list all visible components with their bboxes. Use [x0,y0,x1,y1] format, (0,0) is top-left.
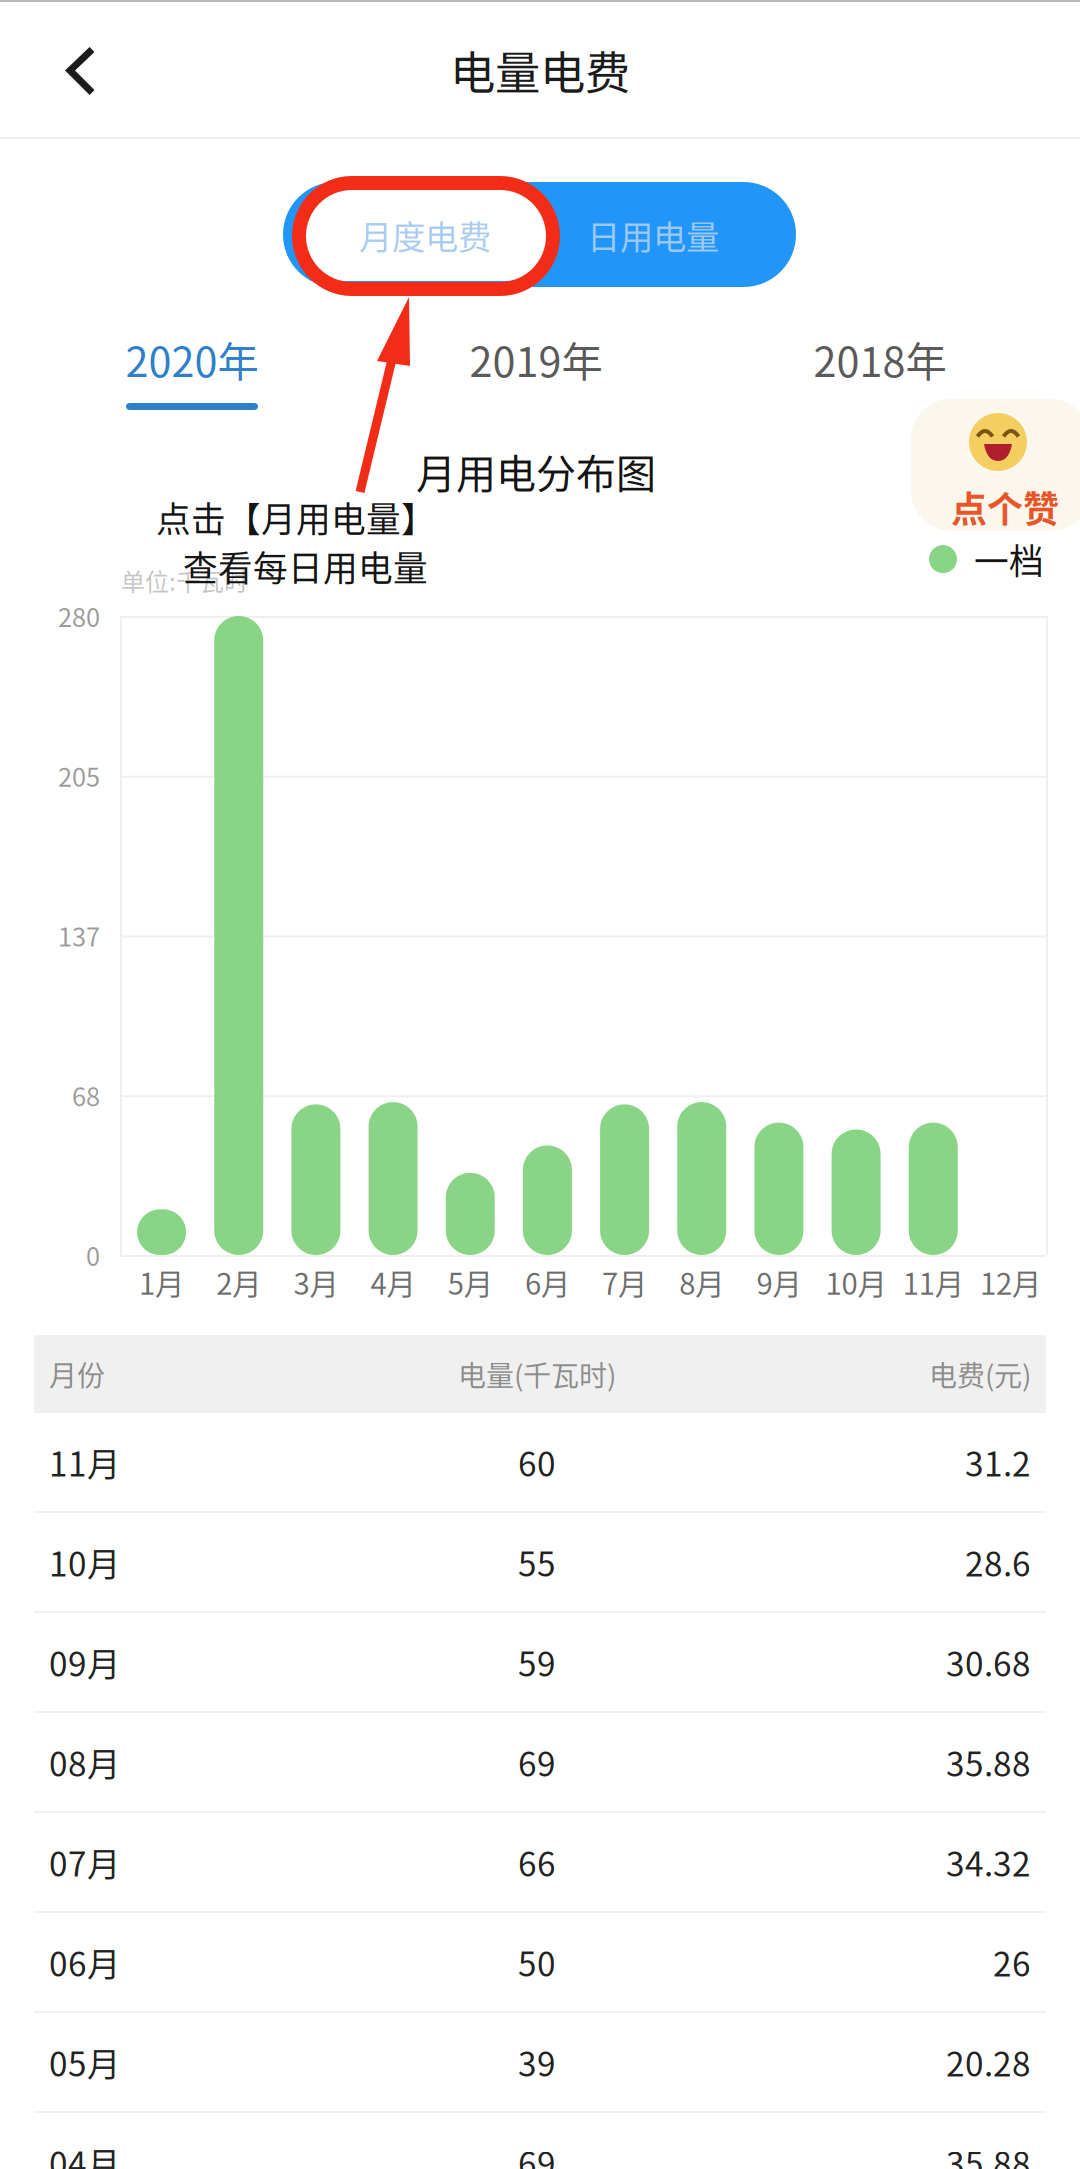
staticText: 34.32 [946,1838,1031,1886]
staticText: 日用电量 [587,211,719,259]
staticText: 08月 [49,1738,120,1786]
staticText: 1月 [139,1261,184,1303]
staticText: 31.2 [965,1438,1031,1486]
staticText: 11月 [49,1438,120,1486]
staticText: 一档 [974,534,1044,584]
staticText: 5月 [448,1261,493,1303]
staticText: 10月 [49,1538,120,1586]
button[interactable]: 06月 [34,1913,1046,2013]
button[interactable]: 2020年 [20,330,364,410]
button[interactable]: 10月 [34,1513,1046,1613]
staticText: 07月 [49,1838,120,1886]
staticText: 0 [86,1237,100,1273]
staticText: 26 [993,1938,1031,1986]
staticText: 39 [518,2038,556,2086]
staticText: 电量(千瓦时) [458,1354,616,1394]
staticText: 280 [58,598,100,634]
staticText: 2019年 [469,329,602,389]
staticText: 09月 [49,1638,120,1686]
button[interactable]: 07月 [34,1813,1046,1913]
button[interactable]: 04月 [34,2113,1046,2169]
staticText: 月用电分布图 [416,442,656,500]
staticText: 55 [518,1538,556,1586]
button[interactable]: 2018年 [708,330,1052,410]
staticText: 7月 [602,1261,647,1303]
staticText: 2018年 [813,329,946,389]
staticText: 单位:千瓦时 [121,563,248,598]
staticText: 20.28 [946,2038,1031,2086]
staticText: 04月 [49,2138,120,2169]
button[interactable]: 08月 [34,1713,1046,1813]
button[interactable]: 11月 [34,1413,1046,1513]
staticText: 6月 [525,1261,570,1303]
button[interactable]: 返回 [21,11,141,131]
staticText: 69 [518,2138,556,2169]
staticText: 30.68 [946,1638,1031,1686]
staticText: 8月 [679,1261,724,1303]
staticText: 2月 [216,1261,261,1303]
staticText: 2020年 [125,329,258,389]
button[interactable]: 09月 [34,1613,1046,1713]
staticText: 11月 [903,1261,964,1303]
button[interactable]: 2019年 [364,330,708,410]
button[interactable]: 日用电量 [530,189,776,281]
staticText: 35.88 [946,1738,1031,1786]
staticText: 4月 [371,1261,416,1303]
staticText: 12月 [980,1261,1041,1303]
staticText: 35.88 [946,2138,1031,2169]
staticText: 点个赞 [951,481,1059,533]
staticText: 电费(元) [929,1354,1031,1394]
staticText: 66 [518,1838,556,1886]
staticText: 9月 [756,1261,801,1303]
button[interactable]: 月度电费 [298,189,552,281]
staticText: 68 [72,1077,100,1114]
staticText: 59 [518,1638,556,1686]
staticText: 电量电费 [450,37,630,103]
staticText: 50 [518,1938,556,1986]
staticText: 60 [518,1438,556,1486]
staticText: 05月 [49,2038,120,2086]
staticText: 点击【月用电量】 [156,492,436,542]
staticText: 137 [58,917,100,954]
staticText: 06月 [49,1938,120,1986]
staticText: 10月 [826,1261,887,1303]
staticText: 月份 [49,1354,105,1394]
staticText: 28.6 [965,1538,1031,1586]
button[interactable]: 点个赞 [911,399,1080,531]
staticText: 69 [518,1738,556,1786]
staticText: 月度电费 [359,211,491,259]
staticText: 205 [58,757,100,794]
staticText: 3月 [293,1261,338,1303]
staticText: 查看每日用电量 [183,541,428,591]
button[interactable]: 05月 [34,2013,1046,2113]
